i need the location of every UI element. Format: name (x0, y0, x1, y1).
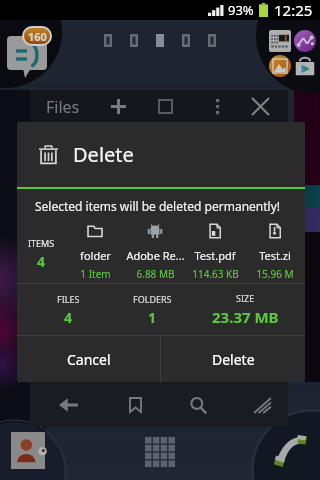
staticText: Cancel (67, 350, 111, 369)
staticText: 4 (64, 308, 73, 327)
staticText: Selected items will be deleted permanent… (35, 198, 281, 214)
button[interactable]: Delete (161, 336, 305, 382)
staticText: Files (46, 96, 80, 118)
staticText: 1 Item (80, 267, 111, 281)
button[interactable]: Walkman (294, 30, 316, 52)
button[interactable]: Cancel (17, 336, 160, 382)
staticText: 12:25 (274, 0, 313, 20)
staticText: 15.96 M (256, 267, 294, 281)
button[interactable]: Bookmarks (115, 385, 155, 425)
staticText: 1 (148, 308, 157, 327)
staticText: SIZE (236, 292, 255, 304)
staticText: Test.zi (259, 248, 291, 263)
button[interactable]: Phone (272, 432, 310, 470)
staticText: Test.pdf (194, 248, 236, 263)
staticText: Delete (73, 141, 134, 168)
button[interactable]: Messaging (5, 26, 53, 74)
button[interactable]: Search (178, 385, 218, 425)
staticText: FILES (57, 293, 80, 305)
button[interactable]: Back (48, 385, 88, 425)
staticText: Delete (212, 350, 255, 369)
staticText: ITEMS (28, 237, 55, 249)
staticText: FOLDERS (133, 293, 172, 305)
staticText: Adobe Re... (126, 248, 185, 263)
staticText: folder (80, 248, 111, 263)
staticText: 4 (37, 252, 46, 271)
button[interactable]: Close (240, 90, 280, 123)
button[interactable]: Play Store (294, 55, 316, 77)
button[interactable]: Select all (149, 90, 182, 123)
button[interactable]: Album (269, 55, 291, 77)
staticText: 6.88 MB (136, 267, 175, 281)
staticText: 93% (228, 1, 254, 19)
button[interactable]: Add (102, 90, 135, 123)
button[interactable]: More options (201, 90, 234, 123)
staticText: 23.37 MB (212, 307, 279, 327)
staticText: 114.63 KB (192, 267, 239, 281)
button[interactable]: Recent apps (242, 385, 282, 425)
staticText: 160 (28, 29, 47, 44)
button[interactable]: Apps (145, 437, 175, 467)
button[interactable]: Contact (11, 432, 45, 469)
button[interactable]: FM Radio (269, 30, 291, 52)
